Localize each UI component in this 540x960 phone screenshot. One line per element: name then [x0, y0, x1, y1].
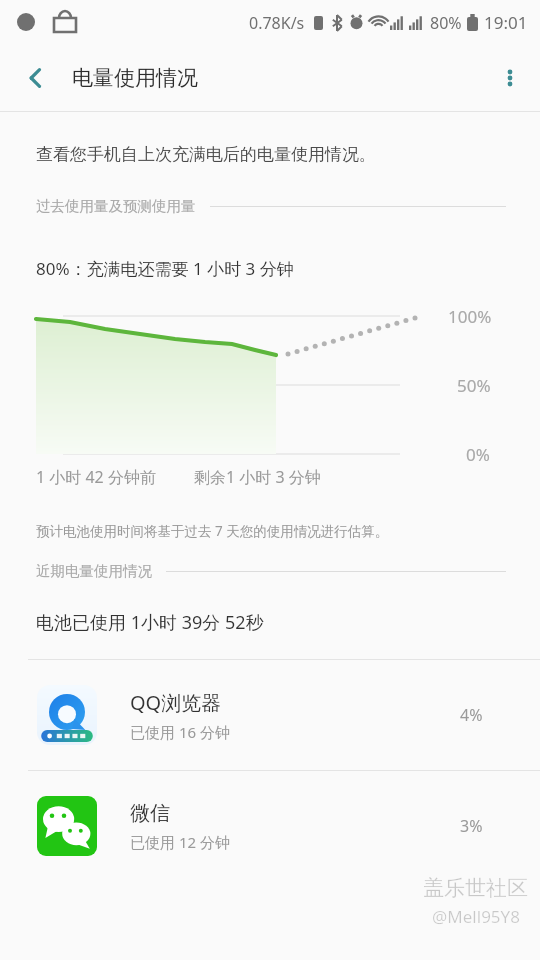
button[interactable]: 微信 [0, 771, 540, 881]
staticText: 微信 [130, 801, 170, 826]
staticText: 预计电池使用时间将基于过去 7 天您的使用情况进行估算。 [36, 522, 389, 540]
button[interactable]: QQ浏览器 [0, 660, 540, 770]
staticText: 1 小时 42 分钟前 [36, 466, 156, 488]
staticText: 0.78K/s [249, 12, 305, 34]
staticText: 0% [466, 443, 490, 466]
staticText: 80%：充满电还需要 1 小时 3 分钟 [36, 257, 294, 280]
staticText: 80% [430, 12, 462, 34]
staticText: 过去使用量及预测使用量 [36, 197, 196, 215]
staticText: 100% [448, 305, 492, 328]
staticText: 电池已使用 1小时 39分 52秒 [36, 610, 264, 635]
staticText: 盖乐世社区 [423, 875, 528, 901]
staticText: 50% [457, 374, 491, 397]
button[interactable]: Back [0, 45, 72, 110]
staticText: 3% [460, 815, 506, 837]
staticText: 4% [460, 704, 506, 726]
staticText: 已使用 16 分钟 [130, 722, 230, 742]
staticText: 电量使用情况 [72, 65, 480, 91]
staticText: 查看您手机自上次充满电后的电量使用情况。 [36, 144, 520, 165]
staticText: QQ浏览器 [130, 689, 222, 716]
staticText: @Mell95Y8 [432, 905, 520, 928]
staticText: 近期电量使用情况 [36, 562, 152, 580]
staticText: 已使用 12 分钟 [130, 832, 230, 852]
staticText: 19:01 [484, 11, 528, 34]
button[interactable]: More options [480, 45, 540, 110]
staticText: 剩余1 小时 3 分钟 [194, 466, 321, 488]
